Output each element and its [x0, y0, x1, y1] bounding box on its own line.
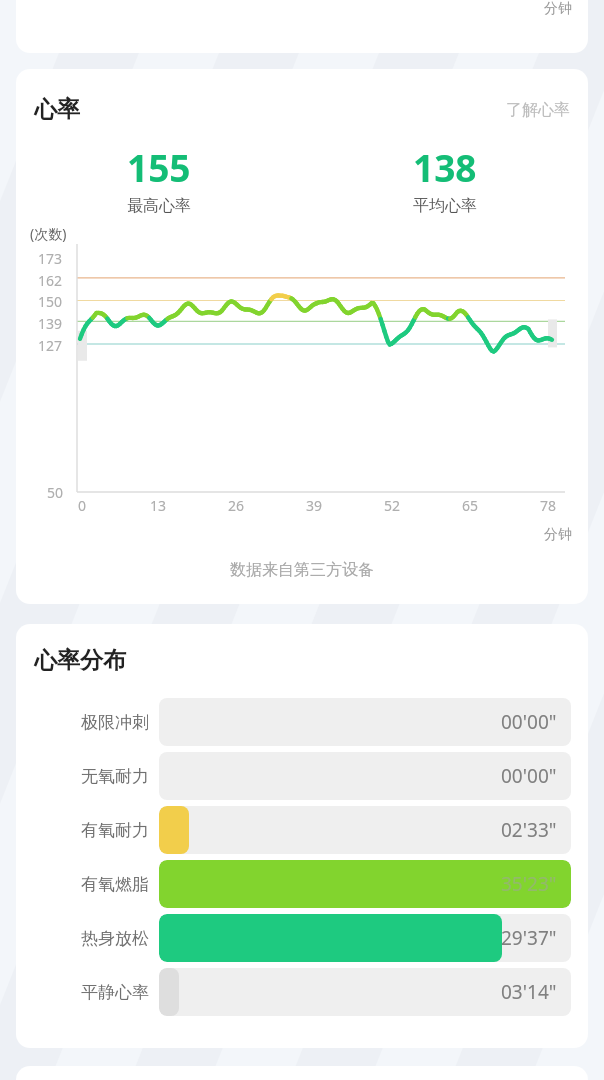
staticText: 02'33": [501, 817, 557, 843]
staticText: 心率分布: [34, 646, 126, 675]
staticText: 最高心率: [127, 196, 191, 216]
staticText: 有氧燃脂: [16, 874, 149, 895]
button[interactable]: 平静心率: [16, 965, 588, 1019]
button[interactable]: 了解心率: [506, 100, 570, 120]
staticText: 平均心率: [413, 196, 477, 216]
staticText: 139: [38, 314, 63, 333]
staticText: 35'23": [501, 871, 557, 897]
staticText: 热身放松: [16, 928, 149, 949]
staticText: 78: [540, 496, 557, 515]
staticText: 有氧耐力: [16, 820, 149, 841]
staticText: 03'14": [501, 979, 557, 1005]
button[interactable]: 有氧燃脂: [16, 857, 588, 911]
staticText: 00'00": [501, 763, 557, 789]
staticText: 了解心率: [506, 100, 570, 120]
staticText: 173: [38, 249, 63, 268]
staticText: 150: [38, 292, 63, 311]
staticText: 0: [78, 496, 87, 515]
staticText: 39: [306, 496, 323, 515]
staticText: 127: [38, 336, 63, 355]
staticText: 52: [384, 496, 401, 515]
button[interactable]: 极限冲刺: [16, 695, 588, 749]
button[interactable]: 热身放松: [16, 911, 588, 965]
staticText: 26: [228, 496, 245, 515]
staticText: 138: [413, 142, 477, 192]
button[interactable]: 有氧耐力: [16, 803, 588, 857]
staticText: 155: [127, 142, 191, 192]
staticText: 分钟: [16, 526, 572, 544]
staticText: 平静心率: [16, 982, 149, 1003]
staticText: 分钟: [544, 0, 572, 18]
staticText: 162: [38, 271, 63, 290]
staticText: (次数): [30, 224, 67, 243]
staticText: 29'37": [501, 925, 557, 951]
button[interactable]: 无氧耐力: [16, 749, 588, 803]
staticText: 13: [150, 496, 167, 515]
staticText: 65: [462, 496, 479, 515]
staticText: 50: [47, 483, 64, 502]
staticText: 极限冲刺: [16, 712, 149, 733]
staticText: 数据来自第三方设备: [16, 560, 588, 580]
staticText: 00'00": [501, 709, 557, 735]
staticText: 心率: [34, 95, 80, 124]
staticText: 无氧耐力: [16, 766, 149, 787]
